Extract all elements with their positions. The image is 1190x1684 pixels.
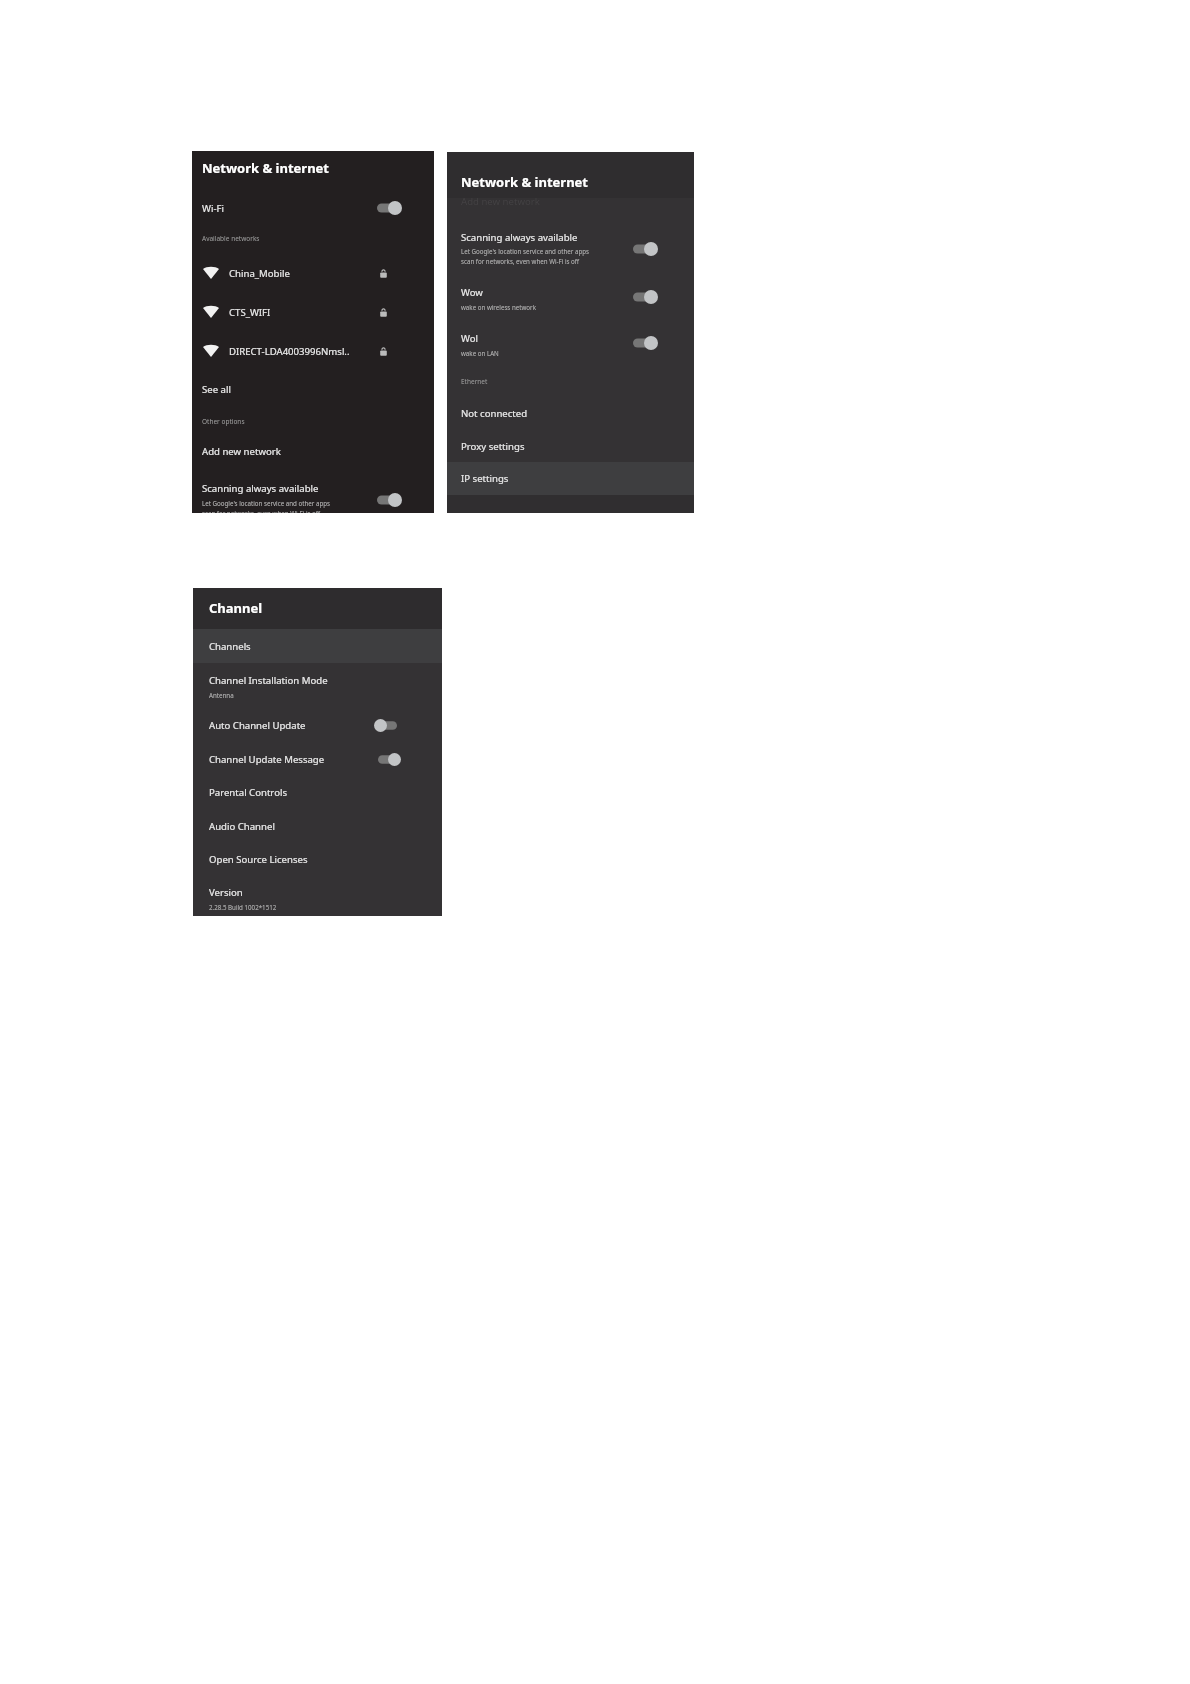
button[interactable]: China_Mobile bbox=[192, 261, 434, 285]
staticText: Network & internet bbox=[461, 173, 589, 191]
staticText: Available networks bbox=[202, 234, 260, 243]
staticText: Let Google's location service and other … bbox=[461, 247, 589, 266]
button[interactable]: Proxy settings bbox=[447, 434, 694, 458]
button[interactable]: Channels bbox=[193, 629, 442, 663]
staticText: Other options bbox=[202, 417, 245, 426]
staticText: wake on wireless network bbox=[461, 303, 536, 311]
button[interactable]: Scanning always available toggle bbox=[192, 482, 434, 513]
button[interactable]: Wi-Fi toggle bbox=[192, 196, 434, 220]
button[interactable]: Wow toggle bbox=[447, 286, 694, 318]
staticText: Let Google's location service and other … bbox=[202, 499, 330, 513]
button[interactable]: CTS_WIFI bbox=[192, 300, 434, 324]
staticText: Channel Installation Mode bbox=[209, 674, 328, 687]
staticText: Add new network bbox=[202, 445, 281, 458]
staticText: Auto Channel Update bbox=[209, 719, 306, 732]
staticText: Scanning always available bbox=[461, 231, 578, 244]
staticText: IP settings bbox=[461, 472, 509, 485]
staticText: Version bbox=[209, 886, 243, 899]
button[interactable]: Channel Update Message toggle bbox=[193, 747, 442, 771]
staticText: Channel bbox=[209, 599, 263, 617]
staticText: Parental Controls bbox=[209, 786, 288, 799]
staticText: Channel Update Message bbox=[209, 753, 325, 766]
staticText: Add new network bbox=[461, 195, 540, 206]
staticText: Proxy settings bbox=[461, 440, 525, 453]
staticText: CTS_WIFI bbox=[229, 306, 378, 319]
button[interactable]: Not connected bbox=[447, 401, 694, 425]
button[interactable]: DIRECT-LDA4003996Nmsl.. bbox=[192, 339, 434, 363]
staticText: Open Source Licenses bbox=[209, 853, 308, 866]
staticText: See all bbox=[202, 383, 231, 396]
button[interactable]: Open Source Licenses bbox=[193, 847, 442, 871]
staticText: wake on LAN bbox=[461, 349, 499, 357]
staticText: China_Mobile bbox=[229, 267, 378, 280]
button[interactable]: Scanning always available toggle bbox=[447, 231, 694, 271]
button[interactable]: Version bbox=[193, 886, 442, 911]
button[interactable]: See all bbox=[192, 379, 434, 399]
button[interactable]: IP settings bbox=[447, 462, 694, 495]
staticText: Wol bbox=[461, 332, 479, 345]
button[interactable]: Wol toggle bbox=[447, 332, 694, 364]
staticText: Antenna bbox=[209, 691, 234, 699]
button[interactable]: Add new network bbox=[192, 441, 434, 461]
button[interactable]: Channel Installation Mode bbox=[193, 674, 442, 699]
staticText: Wow bbox=[461, 286, 483, 299]
staticText: 2.28.5 Build 1002*1512 bbox=[209, 903, 277, 911]
staticText: Channels bbox=[209, 640, 251, 653]
button[interactable]: Auto Channel Update toggle bbox=[193, 713, 442, 737]
staticText: Scanning always available bbox=[202, 482, 319, 495]
staticText: Not connected bbox=[461, 407, 528, 420]
button[interactable]: Audio Channel bbox=[193, 814, 442, 838]
staticText: DIRECT-LDA4003996Nmsl.. bbox=[229, 345, 378, 358]
staticText: Audio Channel bbox=[209, 820, 275, 833]
staticText: Network & internet bbox=[202, 159, 330, 177]
button[interactable]: Parental Controls bbox=[193, 780, 442, 804]
staticText: Ethernet bbox=[461, 377, 488, 386]
staticText: Wi-Fi bbox=[202, 202, 224, 215]
